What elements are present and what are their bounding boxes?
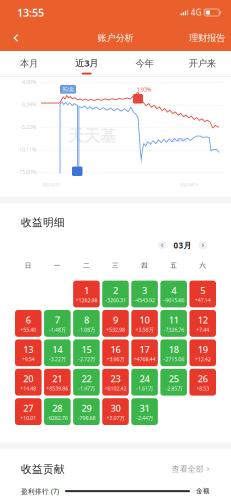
staticText: 26 — [198, 372, 208, 385]
staticText: -5.22% — [20, 123, 36, 131]
button[interactable]: 本月 — [0, 51, 58, 76]
button[interactable]: 6 — [15, 310, 42, 337]
staticText: +9.54 — [22, 356, 35, 363]
button[interactable]: 返回 — [0, 25, 32, 51]
staticText: +47.14 — [195, 297, 211, 304]
button[interactable]: 28 — [44, 398, 71, 425]
staticText: 1 — [84, 284, 89, 297]
staticText: -1.61万 — [136, 385, 153, 392]
staticText: 27 — [23, 402, 33, 414]
button[interactable]: 查看全部 — [172, 464, 210, 474]
staticText: +2.97万 — [106, 414, 124, 421]
button[interactable]: 上个月 — [155, 238, 169, 253]
button[interactable]: 13 — [15, 339, 42, 366]
button[interactable]: 25 — [160, 369, 187, 396]
staticText: -2715.06 — [163, 356, 184, 363]
staticText: 23 — [110, 372, 120, 385]
button[interactable]: 5 — [189, 281, 216, 307]
staticText: 五 — [170, 261, 177, 270]
button[interactable]: 31 — [131, 398, 158, 425]
staticText: 30 — [110, 402, 120, 414]
button[interactable]: 30 — [102, 398, 129, 425]
staticText: 账户分析 — [97, 32, 133, 44]
button[interactable]: 16 — [102, 339, 129, 366]
button[interactable]: 21 — [44, 369, 71, 396]
button[interactable]: 8 — [73, 310, 100, 337]
button[interactable]: 9 — [102, 310, 129, 337]
staticText: 21 — [52, 372, 62, 385]
button[interactable]: 18 — [160, 339, 187, 366]
button[interactable]: 2 — [102, 281, 129, 307]
staticText: -9282.76 — [47, 414, 68, 421]
button[interactable]: 4 — [160, 281, 187, 307]
staticText: -2.72万 — [78, 356, 95, 363]
staticText: -9015.86 — [163, 297, 184, 304]
button[interactable]: 14 — [44, 339, 71, 366]
staticText: 9 — [113, 314, 118, 326]
staticText: -10.11% — [17, 146, 36, 153]
staticText: 收益贡献 — [21, 463, 65, 476]
button[interactable]: 12 — [189, 310, 216, 337]
staticText: +6102.42 — [104, 385, 126, 392]
staticText: 18 — [169, 343, 179, 355]
staticText: 一 — [54, 261, 61, 270]
staticText: 三 — [112, 261, 119, 270]
staticText: +1262.88 — [75, 297, 97, 304]
staticText: 二 — [83, 261, 90, 270]
button[interactable]: 开户来 — [173, 51, 231, 76]
staticText: +14.48 — [20, 385, 36, 392]
staticText: +55.40 — [20, 326, 36, 333]
button[interactable]: 29 — [73, 398, 100, 425]
button[interactable]: 24 — [131, 369, 158, 396]
staticText: 29 — [81, 402, 91, 414]
staticText: +8.53 — [196, 385, 209, 392]
staticText: +3.58万 — [136, 326, 154, 333]
button[interactable]: 22 — [73, 369, 100, 396]
staticText: 31 — [140, 402, 150, 414]
button[interactable]: 下个月 — [195, 238, 210, 253]
staticText: -15.00% — [17, 168, 36, 176]
button[interactable]: 27 — [15, 398, 42, 425]
button[interactable]: 1 — [73, 281, 100, 307]
staticText: 2022-02-01 — [42, 182, 60, 187]
staticText: 16 — [110, 343, 120, 355]
staticText: 10 — [140, 314, 150, 326]
staticText: 19 — [198, 343, 208, 355]
staticText: 日 — [25, 261, 32, 270]
staticText: -1.08万 — [78, 326, 95, 333]
button[interactable]: 7 — [44, 310, 71, 337]
button[interactable]: 近3月 — [58, 51, 116, 76]
staticText: 6 — [26, 314, 31, 326]
staticText: 查看全部 — [172, 464, 204, 474]
staticText: 理财报告 — [189, 32, 225, 44]
staticText: -0.34% — [20, 101, 36, 108]
staticText: +4768.44 — [134, 356, 156, 363]
button[interactable]: 今年 — [115, 51, 173, 76]
button[interactable]: 11 — [160, 310, 187, 337]
staticText: 金额 — [196, 487, 210, 495]
button[interactable]: 3 — [131, 281, 158, 307]
staticText: 六 — [199, 261, 206, 270]
button[interactable]: 20 — [15, 369, 42, 396]
button[interactable]: 15 — [73, 339, 100, 366]
button[interactable]: 23 — [102, 369, 129, 396]
staticText: -2.44万 — [136, 414, 153, 421]
staticText: 4.00% — [22, 78, 36, 86]
staticText: 四 — [141, 261, 148, 270]
staticText: 2 — [113, 284, 118, 297]
staticText: 买/卖 — [62, 86, 74, 93]
staticText: 8 — [84, 314, 89, 326]
staticText: +3.96万 — [106, 356, 124, 363]
button[interactable]: 26 — [189, 369, 216, 396]
staticText: 收益明细 — [21, 216, 65, 229]
staticText: 近3月 — [75, 57, 98, 69]
staticText: -8.40% — [170, 136, 186, 144]
staticText: 7 — [55, 314, 60, 326]
staticText: 03月 — [173, 240, 191, 251]
staticText: 22 — [81, 372, 91, 385]
staticText: +8539.86 — [46, 385, 68, 392]
button[interactable]: 理财报告 — [189, 25, 231, 51]
button[interactable]: 19 — [189, 339, 216, 366]
button[interactable]: 10 — [131, 310, 158, 337]
button[interactable]: 17 — [131, 339, 158, 366]
